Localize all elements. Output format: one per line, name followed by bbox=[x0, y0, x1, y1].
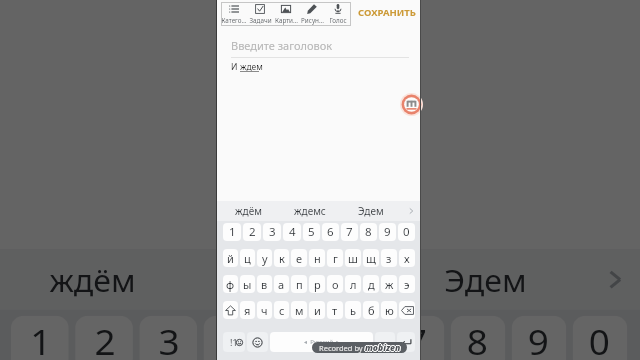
staticText: Катего… bbox=[221, 16, 247, 25]
staticText: 6 bbox=[345, 319, 367, 360]
staticText: в bbox=[261, 277, 268, 292]
staticText: 2 bbox=[94, 319, 117, 360]
button[interactable]: Ещё bbox=[401, 201, 420, 221]
button[interactable]: щ bbox=[363, 249, 379, 267]
staticText: я bbox=[244, 303, 251, 318]
button[interactable]: Ввод bbox=[397, 332, 415, 352]
staticText: 5 bbox=[308, 224, 315, 240]
button[interactable]: в bbox=[257, 275, 272, 293]
button[interactable]: о bbox=[327, 275, 343, 293]
button[interactable]: 9 bbox=[512, 316, 566, 360]
button[interactable]: ждемс bbox=[191, 249, 386, 310]
button[interactable]: з bbox=[381, 249, 397, 267]
button[interactable]: ж bbox=[381, 275, 397, 293]
staticText: 3 bbox=[159, 319, 181, 360]
button[interactable]: Картинка bbox=[273, 2, 299, 26]
button[interactable]: 1 bbox=[11, 316, 69, 360]
button[interactable]: СОХРАНИТЬ bbox=[358, 6, 416, 19]
button[interactable]: . bbox=[375, 332, 395, 352]
button[interactable]: Категории bbox=[221, 2, 247, 26]
button[interactable]: ждемс bbox=[279, 201, 340, 221]
staticText: у bbox=[262, 251, 268, 266]
button[interactable]: ◂ Русский ▸ bbox=[270, 332, 373, 352]
staticText: з bbox=[386, 251, 392, 266]
button[interactable]: Эдем bbox=[340, 201, 401, 221]
button[interactable]: п bbox=[291, 275, 307, 293]
button[interactable]: Рисунок bbox=[299, 2, 325, 26]
staticText: 5 bbox=[284, 319, 306, 360]
button[interactable]: я bbox=[240, 301, 255, 319]
button[interactable]: 4 bbox=[203, 316, 261, 360]
other: Ещё bbox=[407, 207, 415, 215]
button[interactable]: н bbox=[309, 249, 325, 267]
button[interactable]: х bbox=[399, 249, 415, 267]
button[interactable]: ь bbox=[345, 301, 361, 319]
staticText: 4 bbox=[223, 319, 245, 360]
button[interactable]: 7 bbox=[341, 223, 358, 241]
button[interactable]: Ещё bbox=[582, 249, 640, 310]
button[interactable]: Эдем bbox=[386, 249, 582, 310]
button[interactable]: Эмодзи bbox=[247, 332, 268, 352]
button[interactable]: у bbox=[257, 249, 272, 267]
button[interactable]: ждём bbox=[0, 249, 191, 310]
button[interactable]: 6 bbox=[322, 223, 339, 241]
button[interactable]: ю bbox=[381, 301, 397, 319]
other: Эмодзи bbox=[252, 337, 263, 348]
button[interactable]: 8 bbox=[451, 316, 505, 360]
button[interactable]: а bbox=[274, 275, 289, 293]
button[interactable]: м bbox=[291, 301, 307, 319]
staticText: . bbox=[384, 335, 387, 349]
button[interactable]: ждём bbox=[217, 201, 279, 221]
button[interactable]: к bbox=[274, 249, 289, 267]
button[interactable]: й bbox=[223, 249, 238, 267]
button[interactable]: 0 bbox=[398, 223, 415, 241]
button[interactable]: д bbox=[363, 275, 379, 293]
button[interactable]: 0 bbox=[573, 316, 627, 360]
button[interactable]: 5 bbox=[268, 316, 322, 360]
staticText: н bbox=[314, 251, 321, 266]
staticText: Голос bbox=[329, 16, 347, 25]
button[interactable]: 6 bbox=[329, 316, 383, 360]
staticText: ч bbox=[261, 303, 268, 318]
button[interactable]: и bbox=[309, 301, 325, 319]
button[interactable]: !1 bbox=[223, 332, 245, 352]
button[interactable]: 3 bbox=[263, 223, 281, 241]
staticText: о bbox=[332, 277, 339, 292]
button[interactable]: ы bbox=[240, 275, 255, 293]
button[interactable]: е bbox=[291, 249, 307, 267]
button[interactable]: ш bbox=[345, 249, 361, 267]
button[interactable]: р bbox=[309, 275, 325, 293]
staticText: х bbox=[404, 251, 410, 266]
staticText: mobizen bbox=[365, 342, 401, 353]
button[interactable]: т bbox=[327, 301, 343, 319]
button[interactable]: Задачи bbox=[247, 2, 273, 26]
button[interactable]: 8 bbox=[360, 223, 377, 241]
staticText: ф bbox=[226, 277, 235, 292]
staticText: 9 bbox=[528, 319, 550, 360]
button[interactable]: ф bbox=[223, 275, 238, 293]
button[interactable]: 2 bbox=[243, 223, 261, 241]
staticText: ь bbox=[350, 303, 356, 318]
staticText: м bbox=[295, 303, 304, 318]
button[interactable]: ц bbox=[240, 249, 255, 267]
staticText: ж bbox=[385, 277, 394, 292]
button[interactable]: Голос bbox=[325, 2, 351, 26]
staticText: И bbox=[231, 61, 240, 73]
button[interactable]: 5 bbox=[303, 223, 320, 241]
button[interactable]: 9 bbox=[379, 223, 396, 241]
button[interactable]: 3 bbox=[139, 316, 197, 360]
button[interactable]: г bbox=[327, 249, 343, 267]
button[interactable]: Удалить bbox=[399, 301, 415, 319]
button[interactable]: б bbox=[363, 301, 379, 319]
other: Ввод bbox=[401, 337, 412, 348]
staticText: ш bbox=[348, 251, 358, 266]
button[interactable]: 2 bbox=[75, 316, 133, 360]
button[interactable]: л bbox=[345, 275, 361, 293]
button[interactable]: 7 bbox=[390, 316, 444, 360]
button[interactable]: 4 bbox=[283, 223, 301, 241]
button[interactable]: ч bbox=[257, 301, 272, 319]
button[interactable]: 1 bbox=[223, 223, 241, 241]
button[interactable]: с bbox=[274, 301, 289, 319]
button[interactable]: Shift bbox=[223, 301, 238, 319]
button[interactable]: э bbox=[399, 275, 415, 293]
